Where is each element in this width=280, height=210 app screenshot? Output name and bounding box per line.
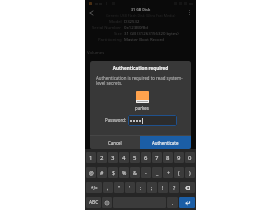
button[interactable]: $ [108, 167, 118, 178]
button[interactable]: Authenticate [140, 136, 191, 149]
staticText: Master Boot Record [124, 36, 164, 42]
staticText: Cancel [108, 140, 122, 146]
button[interactable]: */= [86, 182, 102, 193]
staticText: 5 [133, 154, 137, 162]
staticText: : [140, 184, 142, 191]
button[interactable]: ) [185, 167, 195, 178]
button[interactable]: + [163, 167, 173, 178]
staticText: 1 [89, 154, 93, 162]
staticText: */= [91, 185, 98, 191]
button[interactable]: & [130, 167, 140, 178]
button[interactable]: 3 [108, 152, 118, 163]
staticText: ? [173, 184, 176, 191]
staticText: Volumes [87, 49, 105, 55]
button[interactable]: 6 [141, 152, 151, 163]
staticText: ! [162, 184, 164, 191]
staticText: parkes [135, 105, 149, 111]
button[interactable]: 0 [185, 152, 195, 163]
staticText: Authentication required [90, 65, 191, 71]
staticText: Password: [105, 117, 127, 123]
button[interactable]: Switch keyboard [102, 197, 112, 208]
staticText: , [107, 184, 109, 191]
staticText: Authenticate [152, 140, 179, 146]
button[interactable]: Backspace [180, 182, 195, 193]
staticText: Authentication is required to read syste… [96, 75, 185, 86]
staticText: Generic USB Flash Disk (Ultra Fast Media… [106, 13, 176, 18]
staticText: 4 [122, 154, 126, 162]
staticText: " [118, 184, 121, 191]
staticText: 6 [144, 154, 148, 162]
button[interactable]: ; [147, 182, 157, 193]
staticText: @ [89, 169, 94, 176]
staticText: 3 [111, 154, 115, 162]
button[interactable]: 7 [152, 152, 162, 163]
button[interactable]: ? [169, 182, 179, 193]
button[interactable]: ' [125, 182, 135, 193]
button[interactable]: . [167, 197, 178, 208]
button[interactable]: % [119, 167, 129, 178]
staticText: 0x123B0f8d [124, 24, 148, 30]
staticText: D32532 [124, 18, 140, 24]
staticText: Size [114, 30, 122, 36]
staticText: ' [129, 184, 131, 191]
button[interactable]: 2 [97, 152, 107, 163]
button[interactable] [128, 115, 177, 126]
staticText: _ [156, 169, 159, 176]
staticText: ABC [89, 199, 99, 206]
button[interactable]: 9 [174, 152, 184, 163]
staticText: + [167, 169, 170, 176]
button[interactable]: Enter [179, 197, 195, 208]
button[interactable]: @ [86, 167, 96, 178]
button[interactable]: , [103, 182, 113, 193]
staticText: 7 [155, 154, 159, 162]
button[interactable]: ( [174, 167, 184, 178]
staticText: Model [109, 18, 122, 24]
button[interactable]: ! [158, 182, 168, 193]
button[interactable]: 5 [130, 152, 140, 163]
button[interactable]: " [114, 182, 124, 193]
button[interactable]: 8 [163, 152, 173, 163]
staticText: ; [151, 184, 153, 191]
staticText: 31 GB Disk [131, 7, 151, 12]
staticText: ) [189, 169, 191, 176]
staticText: Serial Number [92, 24, 122, 30]
staticText: 0 [188, 154, 192, 162]
staticText: 9 [177, 154, 181, 162]
button[interactable]: ABC [86, 197, 101, 208]
button[interactable]: _ [152, 167, 162, 178]
staticText: 2 [100, 154, 104, 162]
button[interactable]: Back [85, 6, 98, 19]
staticText: # [100, 169, 104, 176]
button[interactable]: # [97, 167, 107, 178]
button[interactable]: - [141, 167, 151, 178]
button[interactable]: Cancel [90, 136, 140, 149]
staticText: & [133, 169, 137, 176]
staticText: Partitioning [98, 36, 122, 42]
button[interactable]: 4 [119, 152, 129, 163]
staticText: 8 [166, 154, 170, 162]
button[interactable]: More options [183, 6, 196, 19]
staticText: ( [178, 169, 180, 176]
staticText: - [145, 169, 147, 176]
staticText: . [172, 199, 174, 206]
button[interactable]: : [136, 182, 146, 193]
staticText: $ [112, 169, 115, 176]
button[interactable]: 1 [86, 152, 96, 163]
staticText: % [122, 169, 127, 176]
staticText: 31 GB (31263156320 bytes) [124, 30, 179, 36]
